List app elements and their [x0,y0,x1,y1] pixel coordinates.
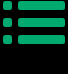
button[interactable]: Open item one [0,1,68,10]
button[interactable]: Open item one [3,1,12,10]
button[interactable]: Open item two [0,18,68,27]
button[interactable]: Open item three [3,35,12,44]
button[interactable]: Open item two [3,18,12,27]
button[interactable]: Open item three [0,35,68,44]
